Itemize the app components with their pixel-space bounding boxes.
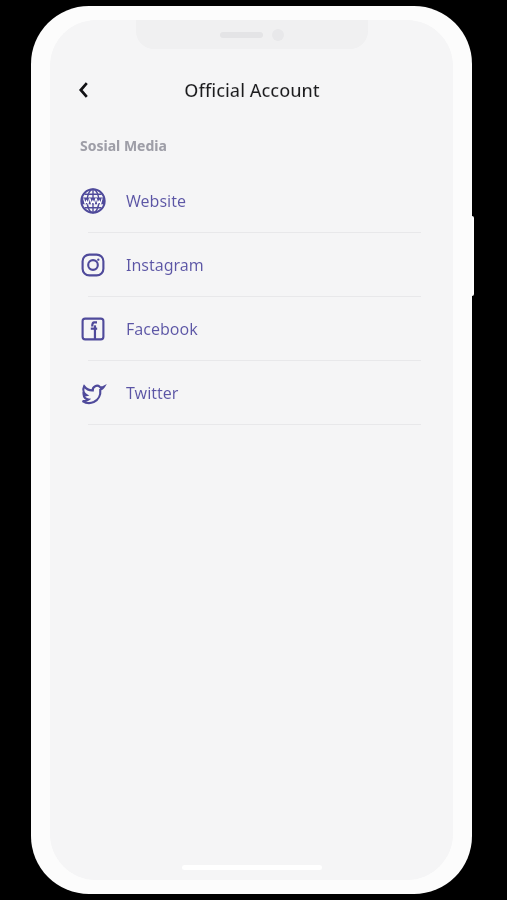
button[interactable]: Instagram (50, 233, 453, 296)
button[interactable]: Website (50, 169, 453, 232)
staticText: Website (126, 190, 187, 212)
button[interactable]: Facebook (50, 297, 453, 360)
staticText: Instagram (126, 254, 204, 276)
staticText: Official Account (184, 78, 320, 103)
staticText: Sosial Media (80, 136, 167, 155)
button[interactable]: Back (66, 72, 102, 108)
staticText: Facebook (126, 318, 198, 340)
staticText: Twitter (126, 382, 179, 404)
button[interactable]: Twitter (50, 361, 453, 424)
